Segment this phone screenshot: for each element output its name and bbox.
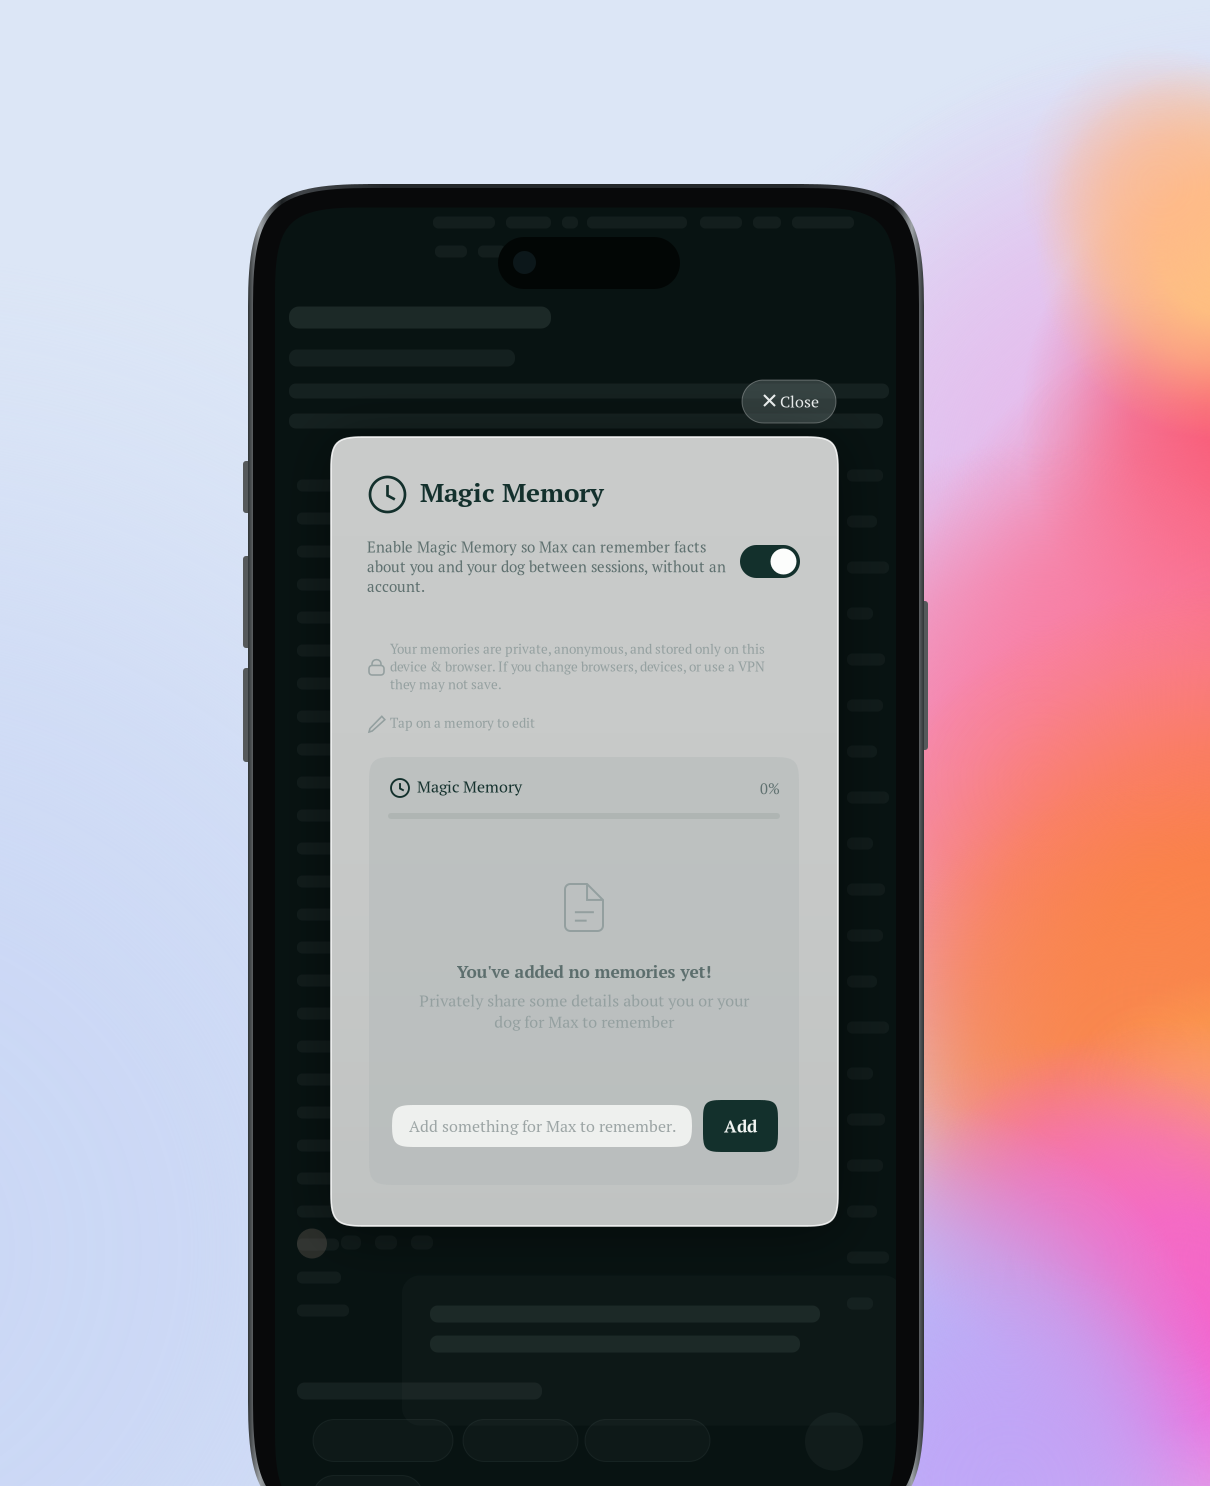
button[interactable]: Close [742,380,836,423]
staticText: Add [724,1114,757,1137]
staticText: Enable Magic Memory so Max can remember … [367,537,726,596]
staticText: You've added no memories yet! [456,960,711,983]
button[interactable]: Add [703,1100,778,1152]
staticText: Magic Memory [417,776,522,797]
staticText: Privately share some details about you o… [419,990,749,1032]
staticText: 0% [760,779,780,798]
staticText: Magic Memory [420,475,604,509]
staticText: Close [780,391,819,412]
button[interactable]: Toggle Magic Memory [740,545,800,578]
staticText: Your memories are private, anonymous, an… [390,640,765,693]
staticText: Add something for Max to remember. [409,1115,676,1137]
staticText: Tap on a memory to edit [390,714,535,732]
